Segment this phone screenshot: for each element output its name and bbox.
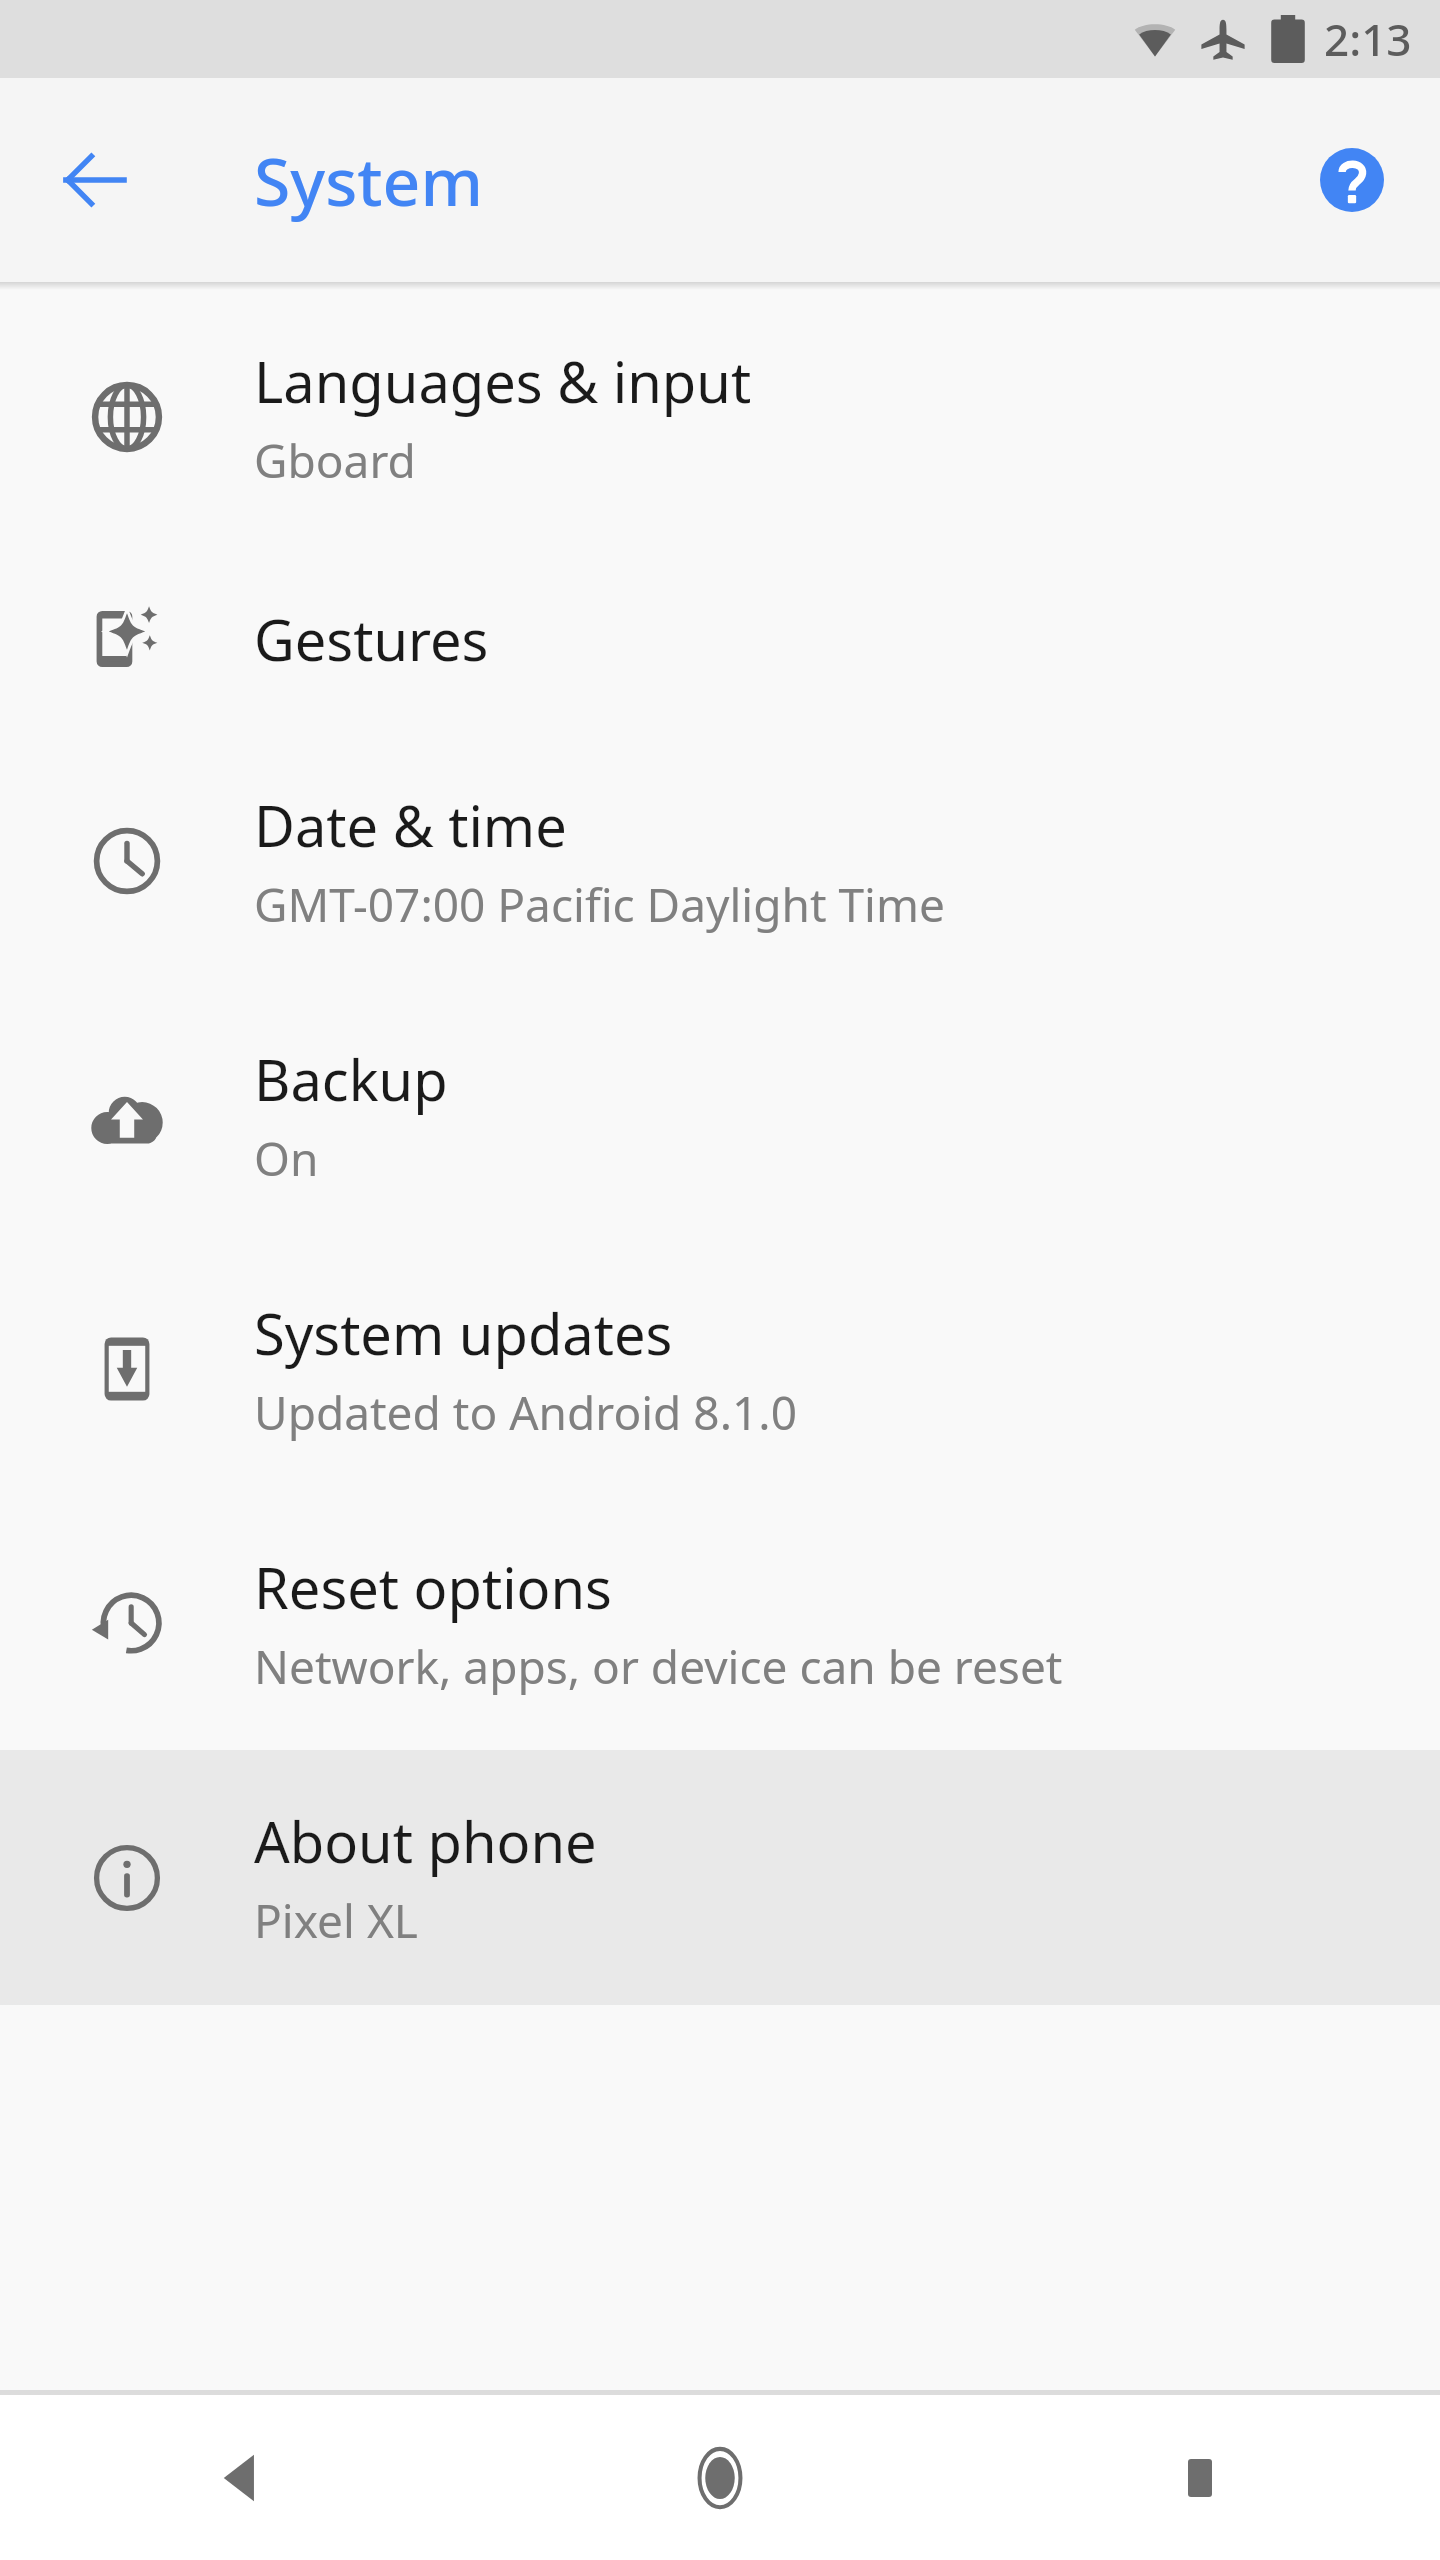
button[interactable]: Home (480, 2395, 960, 2560)
button[interactable]: Languages & input (0, 290, 1440, 544)
button[interactable]: Date & time (0, 734, 1440, 988)
staticText: System updates (254, 1295, 673, 1371)
staticText: 2:13 (1324, 9, 1412, 69)
button[interactable]: Recent apps (960, 2395, 1440, 2560)
staticText: Reset options (254, 1549, 612, 1625)
button[interactable]: Backup (0, 988, 1440, 1242)
button[interactable]: Back (28, 114, 160, 246)
staticText: Gboard (254, 429, 416, 492)
button[interactable]: Back (0, 2395, 480, 2560)
staticText: Backup (254, 1041, 448, 1117)
staticText: Languages & input (254, 343, 752, 419)
staticText: On (254, 1127, 319, 1190)
staticText: Network, apps, or device can be reset (254, 1635, 1063, 1698)
staticText: Date & time (254, 787, 567, 863)
button[interactable]: Help (1286, 114, 1418, 246)
staticText: System (254, 135, 483, 225)
staticText: About phone (254, 1803, 597, 1879)
button[interactable]: Gestures (0, 544, 1440, 734)
button[interactable]: Reset options (0, 1496, 1440, 1750)
button[interactable]: About phone (0, 1750, 1440, 2005)
staticText: Updated to Android 8.1.0 (254, 1381, 797, 1444)
button[interactable]: System updates (0, 1242, 1440, 1496)
staticText: Gestures (254, 601, 489, 677)
staticText: GMT-07:00 Pacific Daylight Time (254, 873, 945, 936)
staticText: Pixel XL (254, 1889, 418, 1952)
